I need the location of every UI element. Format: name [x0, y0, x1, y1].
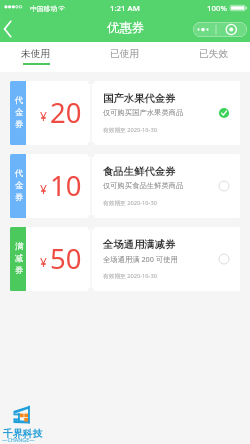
button[interactable]: 代: [10, 81, 240, 145]
staticText: 满: [15, 241, 24, 251]
staticText: ¥: [40, 108, 47, 124]
staticText: 1:21 AM: [110, 3, 140, 14]
staticText: 已失效: [199, 48, 229, 60]
button[interactable]: 满: [10, 227, 240, 291]
staticText: 券: [15, 265, 24, 275]
staticText: 代: [15, 168, 24, 178]
staticText: 国产水果代金券: [103, 92, 176, 105]
staticText: 减: [15, 253, 24, 263]
staticText: 仅可购买国产水果类商品: [103, 108, 184, 117]
staticText: 100%: [207, 3, 227, 14]
staticText: ¥: [40, 254, 47, 270]
staticText: —CHANGE—: [2, 436, 35, 443]
staticText: 金: [15, 107, 24, 117]
staticText: 50: [50, 240, 82, 277]
staticText: 金: [15, 180, 24, 190]
button[interactable]: Menu: [193, 22, 247, 37]
staticText: 千界科技: [3, 428, 43, 440]
staticText: 有效期至 2020-10-30: [103, 272, 157, 280]
button[interactable]: 代: [10, 154, 240, 218]
staticText: 券: [15, 119, 24, 129]
staticText: 已使用: [110, 48, 140, 60]
staticText: 中国移动: [30, 4, 58, 13]
staticText: 未使用: [21, 48, 51, 60]
button[interactable]: 已失效: [194, 42, 234, 72]
staticText: ¥: [40, 181, 47, 197]
staticText: 全场通用满减券: [103, 238, 176, 251]
button[interactable]: Back: [0, 17, 24, 41]
button[interactable]: Select coupon: [217, 106, 231, 120]
staticText: 优惠券: [107, 20, 145, 36]
button[interactable]: 已使用: [105, 42, 145, 72]
button[interactable]: 未使用: [16, 42, 56, 72]
staticText: 20: [50, 94, 82, 131]
staticText: 仅可购买食品生鲜类商品: [103, 181, 184, 190]
staticText: 代: [15, 95, 24, 105]
staticText: 有效期至 2020-10-30: [103, 126, 157, 134]
staticText: 全场通用满 200 可使用: [103, 254, 178, 264]
button[interactable]: Select coupon: [217, 252, 231, 266]
staticText: 10: [50, 167, 82, 204]
staticText: 有效期至 2020-10-30: [103, 199, 157, 207]
staticText: 券: [15, 192, 24, 202]
staticText: 食品生鲜代金券: [103, 165, 176, 178]
button[interactable]: Select coupon: [217, 179, 231, 193]
